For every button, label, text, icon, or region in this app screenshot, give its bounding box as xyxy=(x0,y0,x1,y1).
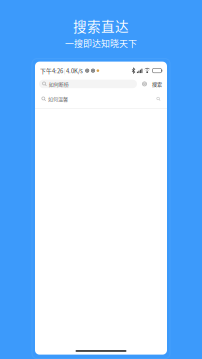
staticText: 如何温馨 xyxy=(48,95,68,102)
staticText: 一搜即达知晓天下 xyxy=(65,37,137,50)
staticText: 搜索直达 xyxy=(73,16,129,36)
staticText: | xyxy=(63,67,66,74)
staticText: 下午4:26 xyxy=(40,66,63,75)
button[interactable]: Settings xyxy=(140,81,149,87)
button[interactable]: 如何温馨 xyxy=(35,88,167,108)
staticText: 如何断桥 xyxy=(49,80,69,88)
button[interactable]: 搜索 xyxy=(152,80,163,88)
staticText: 4.0K/s xyxy=(66,66,83,75)
staticText: 搜索 xyxy=(152,80,162,88)
button[interactable]: 如何断桥 xyxy=(39,80,137,88)
